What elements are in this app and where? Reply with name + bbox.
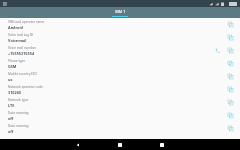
button[interactable]: Copy [227, 73, 234, 80]
button[interactable]: Copy [227, 112, 234, 119]
button[interactable]: Back [66, 139, 90, 150]
staticText: Voice mail tag ID [8, 33, 34, 37]
button[interactable]: Copy [227, 86, 234, 93]
staticText: LTE [8, 103, 15, 108]
button[interactable]: Copy [227, 34, 234, 41]
button[interactable]: Call [214, 47, 221, 54]
button[interactable]: Recent apps [150, 139, 174, 150]
button[interactable]: Mobile country ISO [0, 70, 240, 83]
button[interactable]: SIM 1 [112, 9, 128, 17]
staticText: us [8, 77, 13, 82]
staticText: Data roaming [8, 111, 29, 115]
button[interactable]: Voice mail tag ID [0, 31, 240, 44]
staticText: +15555215554 [8, 51, 35, 56]
staticText: Network type [8, 98, 29, 102]
staticText: GSM [8, 64, 17, 69]
staticText: 310260 [8, 90, 22, 95]
button[interactable]: Copy [227, 125, 234, 132]
staticText: SIM card operator name [8, 20, 45, 24]
staticText: Data roaming [8, 124, 29, 128]
staticText: Phone type [8, 59, 25, 63]
staticText: Android [8, 25, 24, 30]
button[interactable]: Voice mail number [0, 44, 240, 57]
button[interactable]: Network type [0, 96, 240, 109]
button[interactable]: Data roaming [0, 109, 240, 122]
staticText: off [8, 129, 14, 134]
button[interactable]: Home [108, 139, 132, 150]
button[interactable]: Phone type [0, 57, 240, 70]
button[interactable]: Data roaming [0, 122, 240, 135]
button[interactable]: Copy [227, 60, 234, 67]
staticText: Mobile country ISO [8, 72, 37, 76]
button[interactable]: Copy [227, 21, 234, 28]
button[interactable]: Copy [227, 99, 234, 106]
button[interactable]: SIM card operator name [0, 18, 240, 31]
staticText: Voice mail number [8, 46, 36, 50]
staticText: Network operator code [8, 85, 43, 89]
staticText: Voicemail [8, 38, 27, 43]
staticText: SIM 1 [115, 9, 126, 14]
button[interactable]: Network operator code [0, 83, 240, 96]
staticText: off [8, 116, 14, 121]
button[interactable]: Copy [227, 47, 234, 54]
